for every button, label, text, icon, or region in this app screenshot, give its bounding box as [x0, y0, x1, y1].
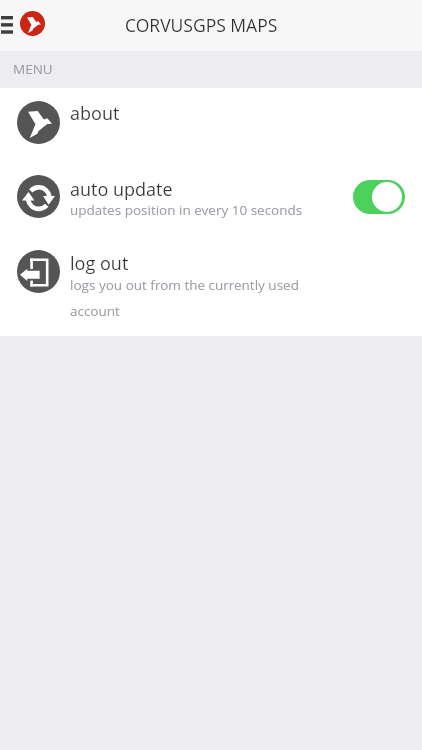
button[interactable]: about: [0, 88, 422, 156]
button[interactable]: log out: [0, 234, 422, 336]
button[interactable]: auto update: [0, 156, 422, 234]
button[interactable]: Auto update enabled: [353, 180, 405, 214]
staticText: log out: [70, 251, 129, 276]
staticText: logs you out from the currently used acc…: [70, 276, 316, 320]
staticText: MENU: [13, 60, 53, 78]
staticText: CORVUSGPS MAPS: [125, 13, 278, 37]
button[interactable]: CorvusGPS logo: [20, 11, 45, 36]
staticText: updates position in every 10 seconds: [70, 201, 303, 219]
button[interactable]: Open navigation drawer: [0, 2, 20, 47]
staticText: auto update: [70, 177, 173, 202]
staticText: about: [70, 101, 120, 126]
